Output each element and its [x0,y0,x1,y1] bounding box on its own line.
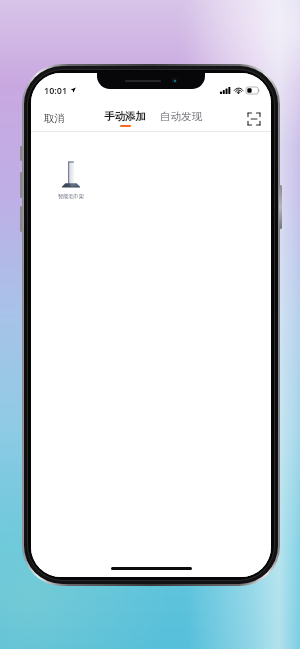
button[interactable]: Scan QR code [237,109,271,129]
button[interactable]: 手动添加 [100,107,150,130]
button[interactable]: 自动发现 [156,107,206,126]
staticText: 智能毛巾架 [58,193,84,200]
staticText: 取消 [44,112,65,125]
other: Power button [279,185,282,229]
button[interactable]: 取消 [31,108,78,129]
staticText: 自动发现 [160,110,202,123]
staticText: 10:01 [44,84,68,96]
staticText: 手动添加 [104,110,146,123]
button[interactable]: 智能毛巾架 [45,160,97,200]
